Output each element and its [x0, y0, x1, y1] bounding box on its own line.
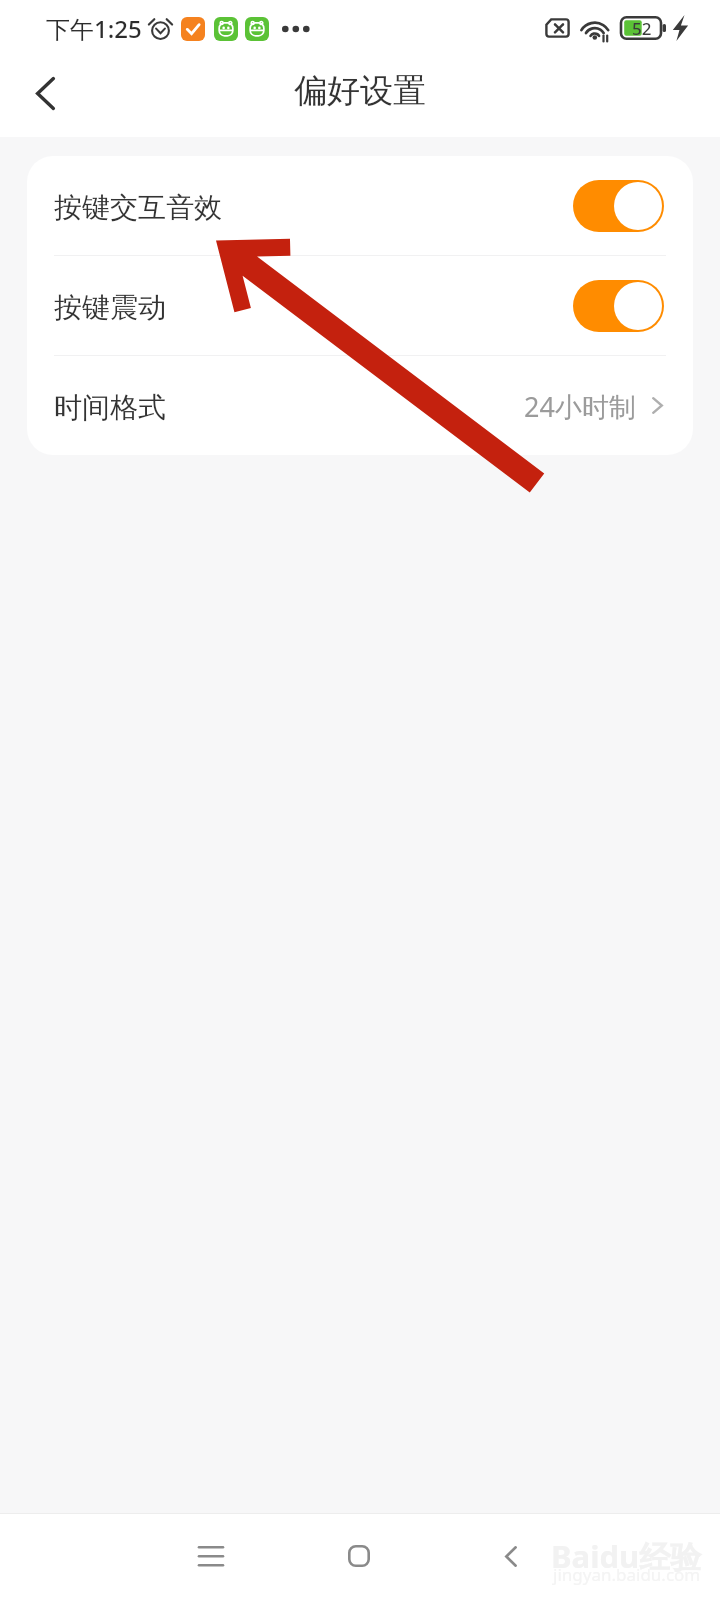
button[interactable]: Home [323, 1520, 395, 1592]
button[interactable]: Recents [175, 1520, 247, 1592]
staticText: 偏好设置 [294, 70, 426, 112]
button[interactable]: Toggle [573, 280, 664, 332]
button[interactable]: Back [475, 1520, 547, 1592]
staticText: 52 [632, 17, 652, 40]
button[interactable]: Back [15, 63, 75, 123]
staticText: jingyan.baidu.com [553, 1563, 701, 1586]
staticText: 时间格式 [54, 390, 166, 425]
staticText: 按键交互音效 [54, 190, 222, 225]
button[interactable]: 按键交互音效 [27, 156, 693, 255]
staticText: 24小时制 [524, 388, 636, 425]
staticText: Baidu经验 [551, 1535, 702, 1577]
button[interactable]: Toggle [573, 180, 664, 232]
button[interactable]: 时间格式 [27, 356, 693, 455]
button[interactable]: 按键震动 [27, 256, 693, 355]
staticText: 下午1:25 [46, 12, 142, 45]
staticText: 按键震动 [54, 290, 166, 325]
